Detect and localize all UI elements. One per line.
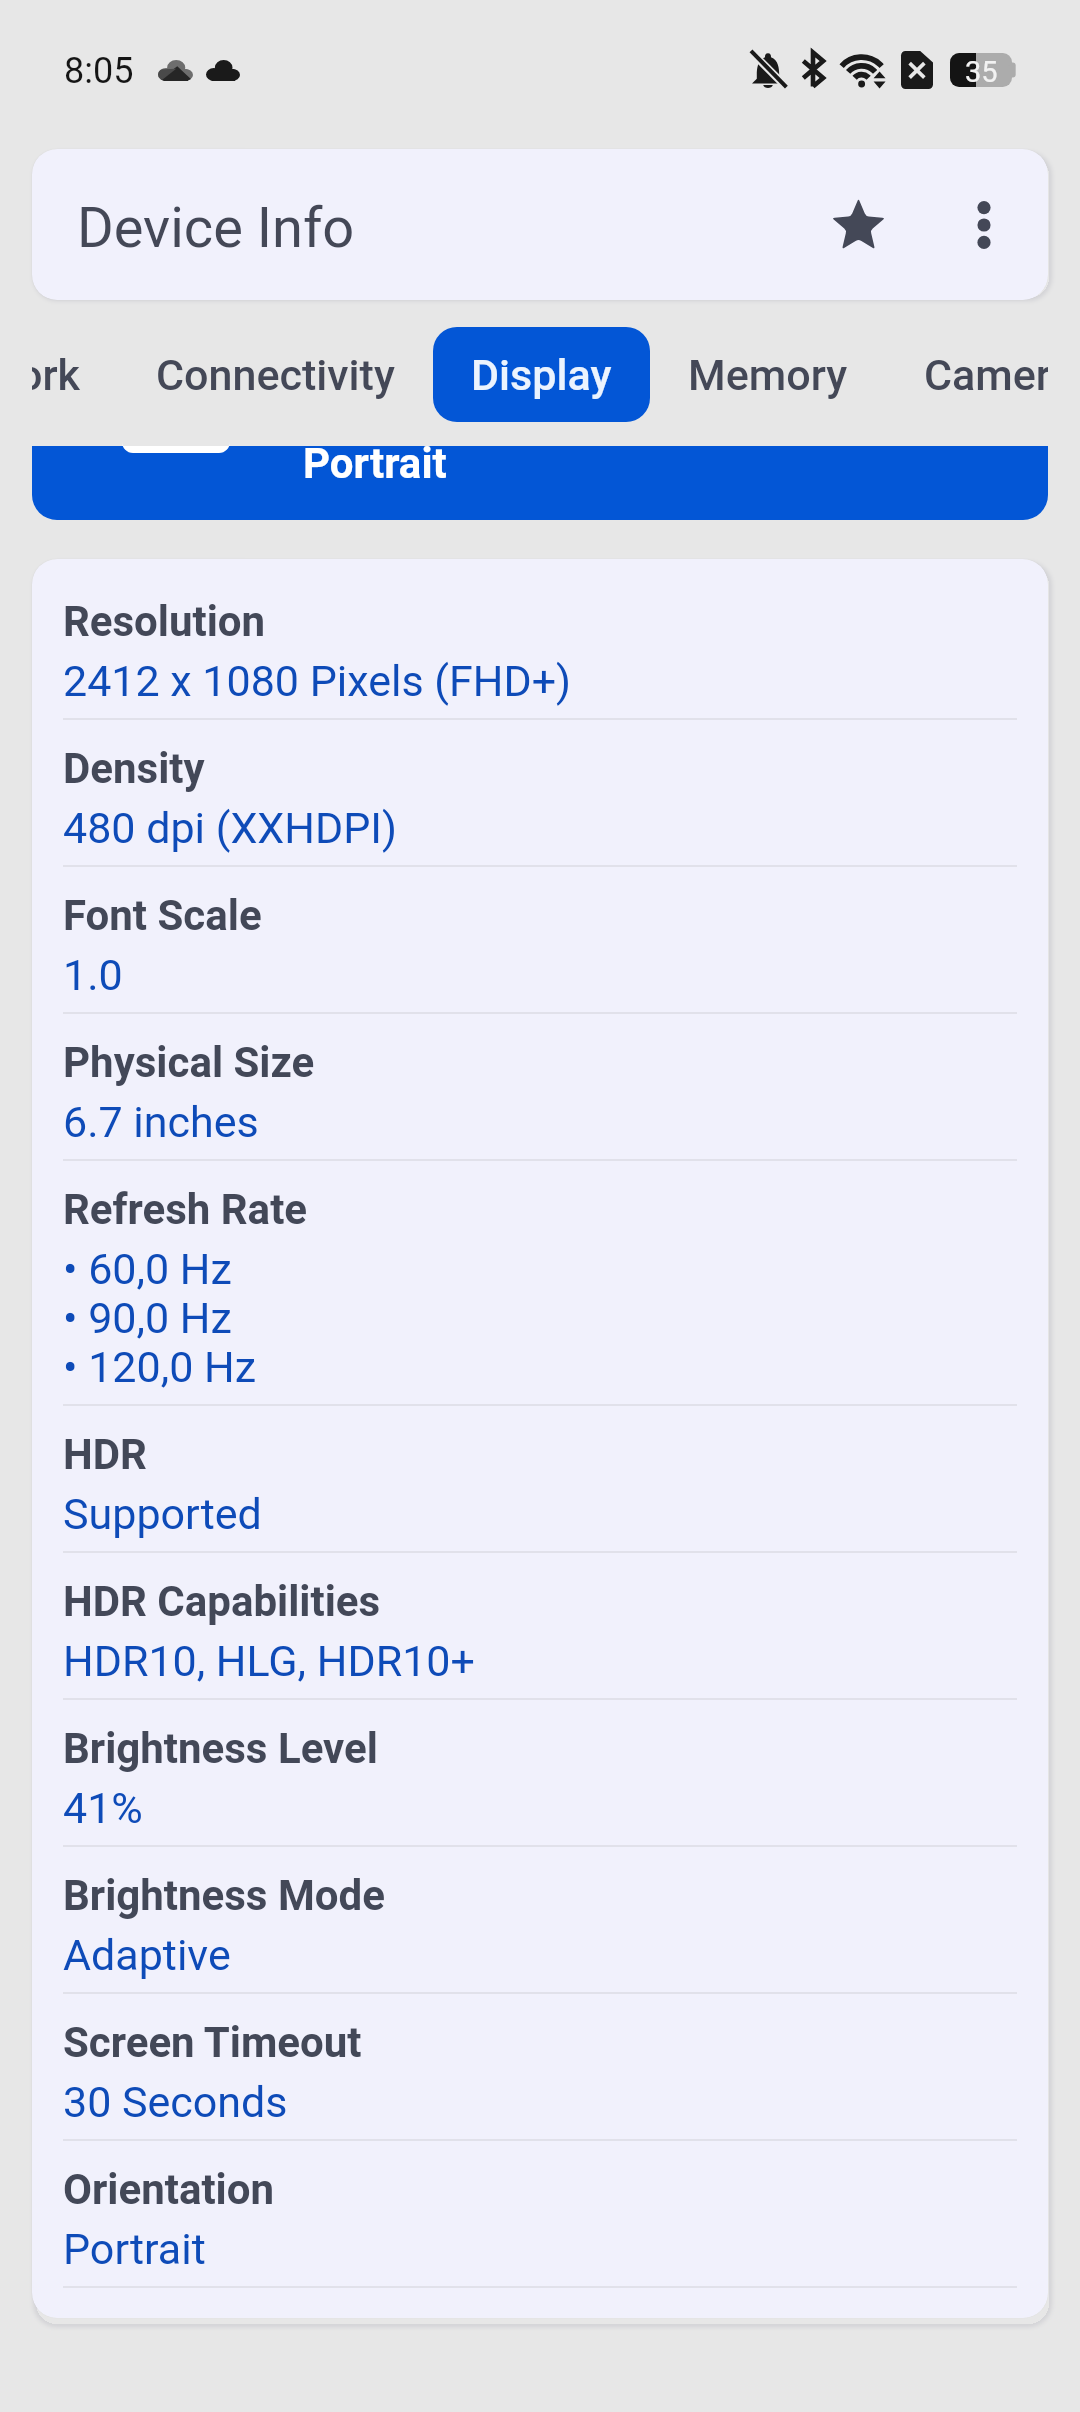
staticText: 480 dpi (XXHDPI) [63, 804, 398, 853]
staticText: Portrait [63, 2225, 206, 2274]
staticText: Portrait [303, 446, 447, 488]
staticText: Orientation [63, 2166, 275, 2214]
staticText: Screen Timeout [63, 2019, 362, 2067]
staticText: Memory [688, 350, 848, 400]
button[interactable]: Network [32, 327, 118, 422]
button[interactable]: Resolution [32, 573, 1048, 720]
button[interactable]: Density [32, 720, 1048, 867]
staticText: • 60,0 Hz • 90,0 Hz • 120,0 Hz [63, 1245, 256, 1392]
button[interactable]: Brightness Mode [32, 1847, 1048, 1994]
staticText: HDR Capabilities [63, 1578, 381, 1626]
staticText: Adaptive [63, 1931, 231, 1980]
button[interactable]: Memory [650, 327, 886, 422]
button[interactable]: Favorite [803, 169, 913, 279]
staticText: Density [63, 745, 205, 793]
button[interactable]: Font Scale [32, 867, 1048, 1014]
staticText: Network [32, 350, 80, 400]
button[interactable]: HDR Capabilities [32, 1553, 1048, 1700]
staticText: 6.7 inches [63, 1098, 259, 1147]
button[interactable]: Brightness Level [32, 1700, 1048, 1847]
staticText: Display [471, 350, 612, 400]
staticText: Camera [924, 350, 1048, 400]
staticText: Connectivity [156, 350, 395, 400]
staticText: 41% [63, 1784, 143, 1833]
button[interactable]: Display [433, 327, 650, 422]
staticText: 30 Seconds [63, 2078, 288, 2127]
staticText: Physical Size [63, 1039, 315, 1087]
button[interactable]: Screen Timeout [32, 1994, 1048, 2141]
staticText: HDR [63, 1431, 147, 1479]
staticText: Supported [63, 1490, 262, 1539]
staticText: 8:05 [64, 50, 134, 92]
staticText: Brightness Mode [63, 1872, 385, 1920]
staticText: 1.0 [63, 951, 123, 1000]
button[interactable]: Connectivity [118, 327, 433, 422]
staticText: 35 [965, 55, 998, 89]
staticText: Resolution [63, 598, 266, 646]
staticText: Refresh Rate [63, 1186, 308, 1234]
button[interactable]: Physical Size [32, 1014, 1048, 1161]
staticText: Brightness Level [63, 1725, 378, 1773]
button[interactable]: HDR [32, 1406, 1048, 1553]
button[interactable]: More options [929, 170, 1039, 280]
staticText: Font Scale [63, 892, 262, 940]
staticText: Device Info [77, 195, 355, 261]
staticText: HDR10, HLG, HDR10+ [63, 1637, 475, 1686]
staticText: 2412 x 1080 Pixels (FHD+) [63, 657, 572, 706]
button[interactable]: Camera [886, 327, 1048, 422]
button[interactable]: Refresh Rate [32, 1161, 1048, 1406]
button[interactable]: Orientation [32, 2141, 1048, 2288]
